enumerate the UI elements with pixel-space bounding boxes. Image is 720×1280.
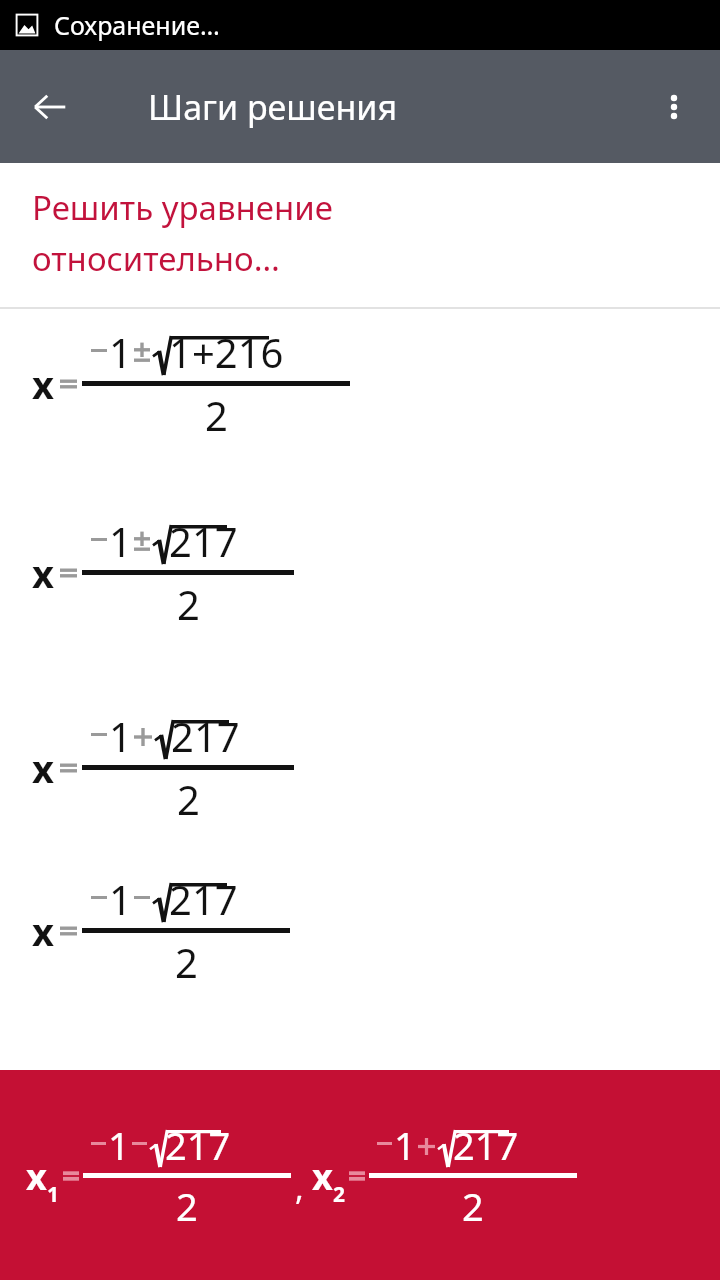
- staticText: 2: [177, 577, 200, 631]
- staticText: 1: [109, 325, 132, 379]
- staticText: x: [26, 1151, 47, 1200]
- staticText: относительно…: [32, 236, 280, 281]
- staticText: x: [32, 358, 54, 410]
- staticText: 1: [109, 872, 132, 926]
- button[interactable]: x: [0, 872, 290, 989]
- staticText: ,: [295, 1165, 304, 1209]
- staticText: 2: [176, 1180, 198, 1232]
- staticText: x: [32, 742, 54, 794]
- staticText: 1: [47, 1180, 59, 1208]
- staticText: 217: [169, 872, 238, 926]
- button[interactable]: x: [0, 709, 294, 826]
- staticText: x: [312, 1151, 333, 1200]
- staticText: 217: [165, 1119, 231, 1171]
- staticText: 2: [462, 1180, 484, 1232]
- button[interactable]: x: [0, 1070, 720, 1280]
- button[interactable]: x: [0, 325, 350, 442]
- staticText: 1: [394, 1119, 416, 1171]
- staticText: 217: [171, 709, 240, 763]
- button[interactable]: Назад: [20, 77, 80, 137]
- staticText: 217: [453, 1119, 519, 1171]
- staticText: 1+216: [169, 325, 284, 379]
- staticText: 2: [175, 935, 198, 989]
- staticText: 1: [109, 709, 132, 763]
- staticText: x: [32, 905, 54, 957]
- button[interactable]: Ещё: [644, 77, 704, 137]
- staticText: Шаги решения: [148, 84, 398, 130]
- staticText: 2: [205, 388, 228, 442]
- staticText: 2: [177, 772, 200, 826]
- staticText: Сохранение…: [54, 8, 220, 42]
- staticText: x: [32, 547, 54, 599]
- staticText: 1: [108, 1119, 130, 1171]
- staticText: Решить уравнение: [32, 185, 333, 230]
- button[interactable]: x: [0, 514, 294, 631]
- staticText: 1: [109, 514, 132, 568]
- staticText: 217: [169, 514, 238, 568]
- staticText: 2: [333, 1180, 345, 1208]
